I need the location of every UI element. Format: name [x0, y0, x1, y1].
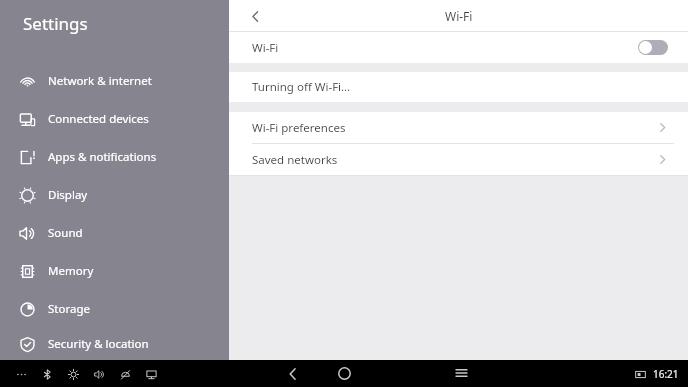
- staticText: Wi-Fi: [445, 8, 473, 24]
- button[interactable]: Sound: [0, 214, 229, 252]
- button[interactable]: Saved networks: [229, 144, 688, 175]
- button[interactable]: Brightness: [60, 361, 86, 387]
- button[interactable]: Display: [0, 176, 229, 214]
- button[interactable]: Wi-Fi preferences: [229, 112, 688, 143]
- button[interactable]: Home: [329, 360, 359, 387]
- button[interactable]: Bluetooth: [34, 361, 60, 387]
- button[interactable]: Network & internet: [0, 62, 229, 100]
- staticText: Storage: [48, 301, 90, 317]
- button[interactable]: Memory: [0, 252, 229, 290]
- staticText: Display: [48, 187, 88, 203]
- button[interactable]: Wi-Fi toggle: [638, 40, 668, 55]
- staticText: Settings: [23, 12, 88, 35]
- button[interactable]: Wi-Fi: [229, 32, 688, 63]
- staticText: Apps & notifications: [48, 149, 157, 165]
- button[interactable]: More: [8, 361, 34, 387]
- staticText: Wi-Fi: [252, 40, 279, 56]
- button[interactable]: Security & location: [0, 328, 229, 360]
- button[interactable]: Back: [278, 360, 308, 387]
- staticText: Connected devices: [48, 111, 149, 127]
- staticText: Saved networks: [252, 152, 338, 168]
- button[interactable]: Screenshot: [138, 361, 164, 387]
- button[interactable]: Recent apps: [446, 360, 476, 387]
- staticText: Network & internet: [48, 73, 152, 89]
- button[interactable]: Storage: [0, 290, 229, 328]
- button[interactable]: Apps & notifications: [0, 138, 229, 176]
- staticText: Sound: [48, 225, 83, 241]
- button[interactable]: Do not disturb: [112, 361, 138, 387]
- staticText: 16:21: [653, 367, 679, 381]
- button[interactable]: Turning off Wi-Fi…: [229, 72, 688, 102]
- staticText: Turning off Wi-Fi…: [252, 79, 351, 95]
- button[interactable]: Back: [243, 4, 267, 28]
- button[interactable]: Connected devices: [0, 100, 229, 138]
- staticText: Security & location: [48, 336, 149, 352]
- button[interactable]: Volume: [86, 361, 112, 387]
- staticText: Memory: [48, 263, 94, 279]
- staticText: Wi-Fi preferences: [252, 120, 346, 136]
